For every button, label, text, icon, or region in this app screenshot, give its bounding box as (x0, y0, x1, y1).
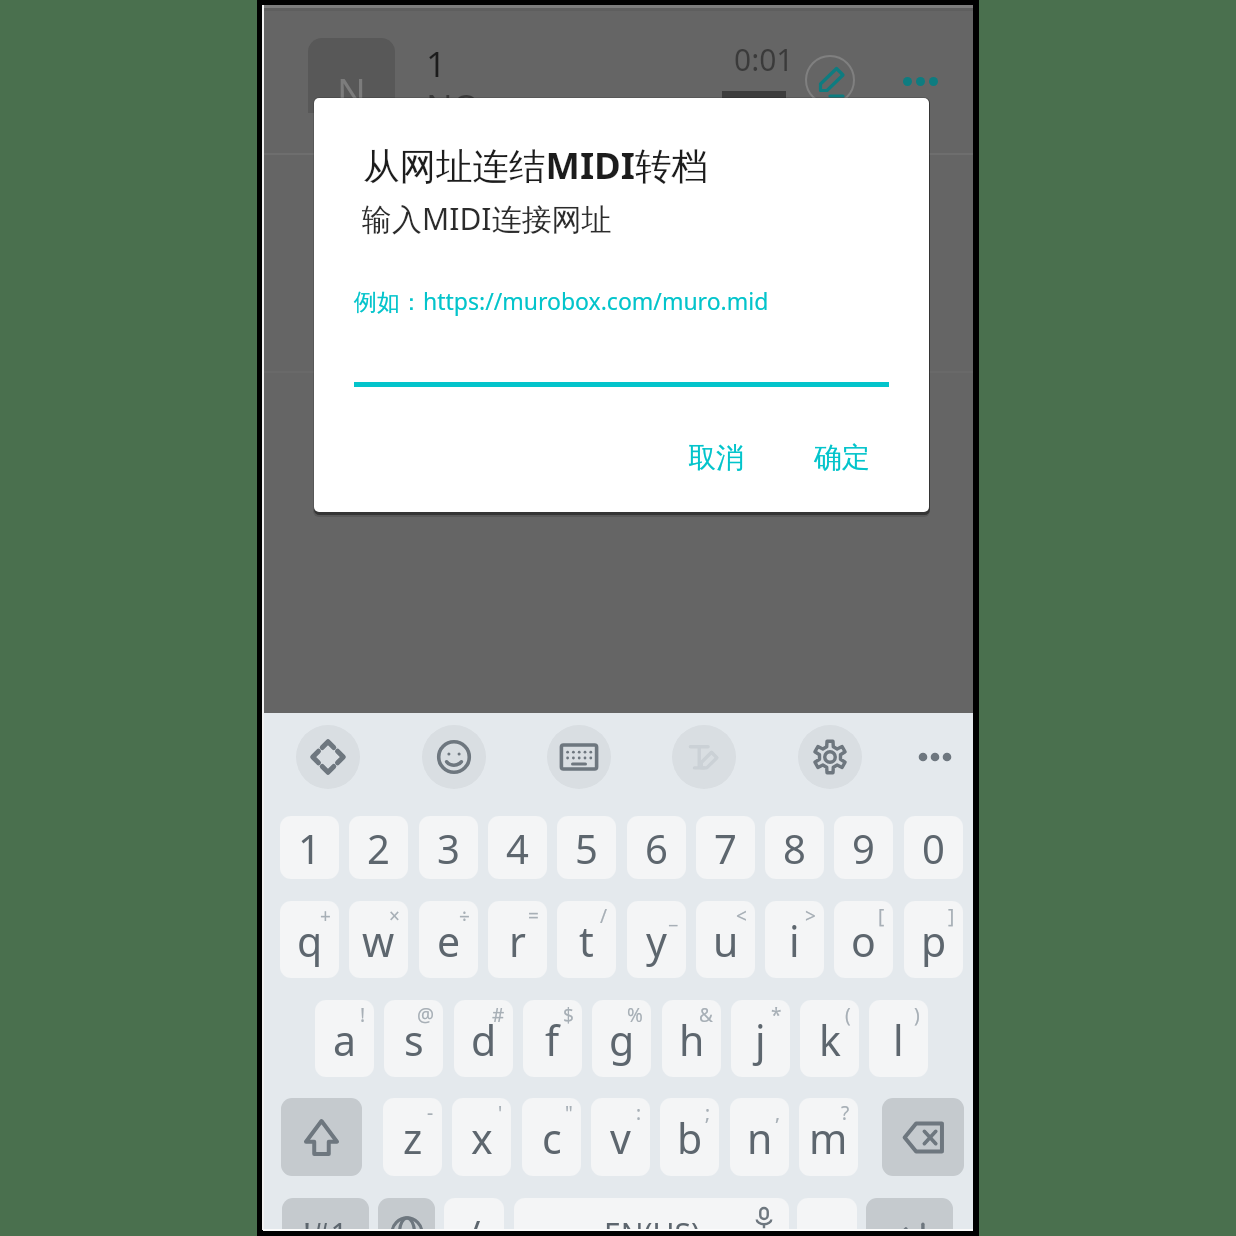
staticText: % (627, 1002, 643, 1028)
staticText: 7 (714, 821, 737, 875)
button[interactable]: # (454, 1000, 513, 1077)
button[interactable]: Keyboard layout (547, 725, 611, 789)
staticText: 确定 (814, 440, 870, 475)
staticText: N (337, 65, 366, 113)
staticText: NO (426, 83, 480, 131)
staticText: ) (914, 1002, 920, 1028)
button[interactable]: Emoji (422, 725, 486, 789)
button[interactable]: EN(US) (514, 1198, 789, 1230)
button[interactable]: Settings (798, 725, 862, 789)
button[interactable]: ÷ (419, 901, 478, 978)
staticText: q (297, 913, 323, 969)
button[interactable]: 6 (627, 816, 686, 879)
button[interactable]: × (349, 901, 408, 978)
staticText: i (789, 913, 800, 969)
button[interactable]: ] (904, 901, 963, 978)
button[interactable]: ? (799, 1098, 858, 1176)
staticText: ! (360, 1002, 366, 1028)
button[interactable]: 1 (280, 816, 339, 879)
button[interactable]: Change language (378, 1198, 435, 1230)
button[interactable]: 取消 (670, 428, 762, 487)
staticText: / (600, 903, 608, 929)
staticText: # (492, 1002, 505, 1028)
button[interactable]: 确定 (796, 428, 888, 487)
button[interactable]: < (696, 901, 755, 978)
button[interactable]: > (765, 901, 824, 978)
staticText: / (467, 1209, 481, 1230)
button[interactable]: / (444, 1198, 504, 1230)
staticText: 5 (575, 821, 598, 875)
staticText: _ (669, 903, 678, 929)
staticText: 取消 (688, 440, 744, 475)
button[interactable]: ; (660, 1098, 719, 1176)
button[interactable]: , (730, 1098, 789, 1176)
button[interactable]: % (592, 1000, 651, 1077)
staticText: * (771, 1002, 782, 1028)
button[interactable]: Backspace (882, 1098, 964, 1176)
button[interactable]: + (280, 901, 339, 978)
staticText: 2 (367, 821, 390, 875)
staticText: 6 (645, 821, 668, 875)
staticText: 9 (852, 821, 875, 875)
button[interactable]: 3 (419, 816, 478, 879)
staticText: l (893, 1012, 904, 1068)
staticText: × (389, 903, 400, 929)
staticText: 0:01 (734, 39, 794, 80)
staticText: 从网址连结MIDI转档 (363, 140, 709, 190)
button[interactable]: !#1 (282, 1198, 369, 1230)
button[interactable]: @ (384, 1000, 443, 1077)
staticText: o (851, 913, 876, 969)
button[interactable]: More (903, 725, 967, 789)
staticText: ' (498, 1100, 503, 1126)
button[interactable]: Enter (866, 1198, 953, 1230)
staticText: - (427, 1100, 434, 1126)
button[interactable]: Shift (281, 1098, 362, 1176)
button[interactable]: 8 (765, 816, 824, 879)
button[interactable]: 4 (488, 816, 547, 879)
button[interactable]: ! (315, 1000, 374, 1077)
staticText: EN(US) (604, 1213, 700, 1230)
button[interactable]: ' (452, 1098, 511, 1176)
button[interactable]: ) (869, 1000, 928, 1077)
staticText: 0 (922, 821, 945, 875)
button[interactable]: " (522, 1098, 581, 1176)
staticText: 4 (506, 821, 529, 875)
button[interactable]: : (591, 1098, 650, 1176)
button[interactable]: Handwriting (672, 725, 736, 789)
staticText: d (471, 1012, 497, 1068)
button[interactable]: 9 (834, 816, 893, 879)
staticText: w (362, 913, 395, 969)
staticText: t (579, 913, 594, 969)
staticText: " (565, 1100, 573, 1126)
staticText: + (320, 903, 331, 929)
staticText: n (747, 1110, 773, 1166)
button[interactable]: 7 (696, 816, 755, 879)
staticText: v (610, 1110, 631, 1166)
staticText: 例如：https://murobox.com/muro.mid (354, 285, 769, 316)
staticText: r (509, 913, 526, 969)
staticText: 1 (426, 40, 447, 88)
staticText: , (775, 1100, 781, 1126)
button[interactable]: 0 (904, 816, 963, 879)
staticText: h (679, 1012, 705, 1068)
button[interactable]: = (488, 901, 547, 978)
button[interactable]: 5 (557, 816, 616, 879)
staticText: j (755, 1012, 766, 1068)
button[interactable]: * (731, 1000, 790, 1077)
staticText: : (636, 1100, 642, 1126)
button[interactable]: & (662, 1000, 721, 1077)
staticText: ; (705, 1100, 711, 1126)
staticText: e (437, 913, 461, 969)
button[interactable]: - (383, 1098, 442, 1176)
button[interactable]: ( (800, 1000, 859, 1077)
button[interactable]: [ (834, 901, 893, 978)
staticText: 8 (783, 821, 806, 875)
button[interactable]: / (557, 901, 616, 978)
button[interactable]: Move cursor (296, 725, 360, 789)
button[interactable]: $ (523, 1000, 582, 1077)
staticText: x (471, 1110, 493, 1166)
button[interactable]: 2 (349, 816, 408, 879)
button[interactable]: _ (627, 901, 686, 978)
